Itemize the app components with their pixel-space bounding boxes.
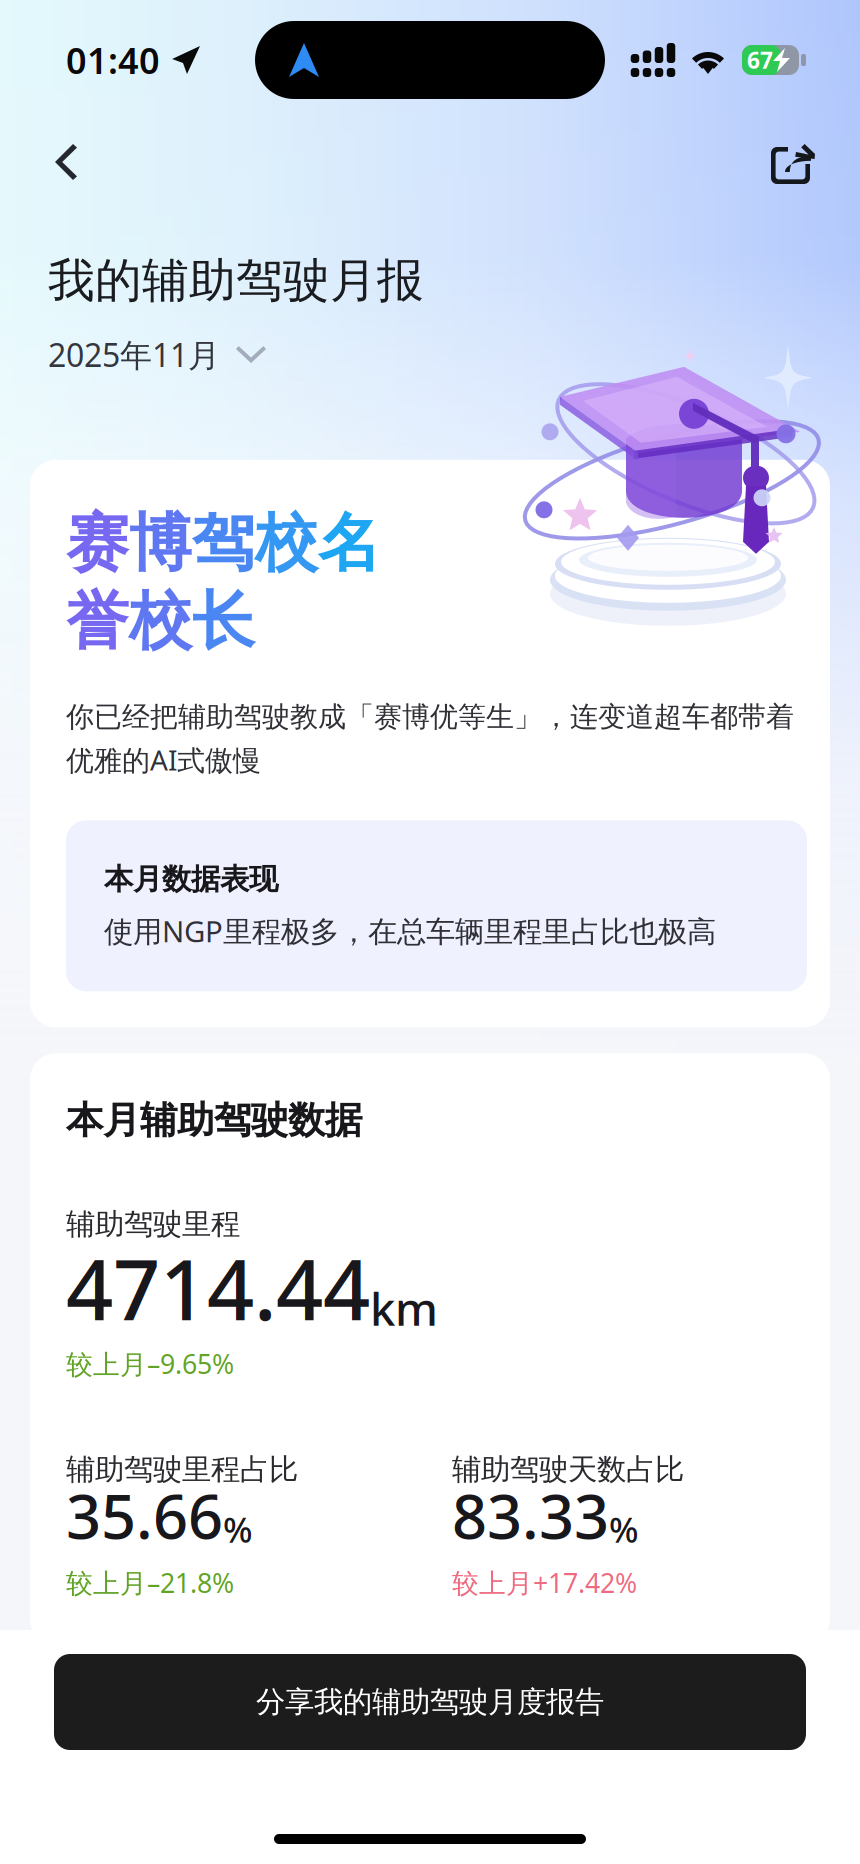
staticText: 辅助驾驶天数占比 xyxy=(452,1451,684,1487)
staticText: 辅助驾驶里程占比 xyxy=(66,1451,298,1487)
staticText: 名 xyxy=(318,505,381,582)
staticText: 使用NGP里程极多，在总车辆里程里占比也极高 xyxy=(104,911,716,950)
staticText: 长 xyxy=(192,583,255,660)
button[interactable]: Back xyxy=(18,120,114,204)
staticText: 赛 xyxy=(66,505,129,582)
staticText: 我的辅助驾驶月报 xyxy=(48,252,424,309)
button[interactable]: 分享我的辅助驾驶月度报告 xyxy=(54,1654,806,1750)
button[interactable]: Share xyxy=(746,120,842,204)
staticText: 驾 xyxy=(192,505,255,582)
staticText: % xyxy=(609,1506,639,1552)
staticText: 分享我的辅助驾驶月度报告 xyxy=(256,1684,604,1720)
staticText: km xyxy=(370,1278,438,1338)
staticText: 67 xyxy=(747,45,773,75)
staticText: 4714.44 xyxy=(66,1233,370,1343)
staticText: 你已经把辅助驾驶教成「赛博优等生」，连变道超车都带着优雅的AI式傲慢 xyxy=(66,700,794,778)
staticText: 誉 xyxy=(66,583,129,660)
staticText: 较上月+17.42% xyxy=(452,1565,637,1600)
staticText: % xyxy=(223,1506,253,1552)
button[interactable]: 2025年11月 xyxy=(48,309,266,376)
staticText: 35.66 xyxy=(66,1474,223,1556)
staticText: 较上月–9.65% xyxy=(66,1346,234,1381)
staticText: 83.33 xyxy=(452,1474,609,1556)
staticText: 辅助驾驶里程 xyxy=(66,1206,240,1242)
staticText: 本月辅助驾驶数据 xyxy=(66,1097,362,1143)
staticText: 较上月–21.8% xyxy=(66,1565,234,1600)
staticText: 本月数据表现 xyxy=(104,861,278,897)
staticText: 博 xyxy=(129,505,192,582)
staticText: 校 xyxy=(255,505,318,582)
staticText: 2025年11月 xyxy=(48,333,220,376)
staticText: 01:40 xyxy=(66,36,160,84)
staticText: 校 xyxy=(129,583,192,660)
